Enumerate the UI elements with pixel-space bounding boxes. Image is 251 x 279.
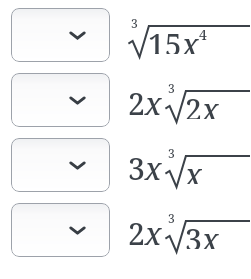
- staticText: 2x: [185, 89, 219, 119]
- button[interactable]: Open answer dropdown: [11, 8, 110, 62]
- button[interactable]: Open answer dropdown: [11, 73, 110, 127]
- button[interactable]: Open answer dropdown: [11, 138, 110, 192]
- staticText: x: [185, 154, 202, 184]
- staticText: 3: [168, 210, 175, 226]
- staticText: 3: [131, 15, 138, 31]
- staticText: 15x: [148, 24, 199, 54]
- staticText: 3x: [185, 219, 219, 249]
- staticText: 3: [168, 145, 175, 161]
- staticText: 4: [199, 25, 207, 44]
- staticText: 2x: [128, 213, 162, 254]
- staticText: 3: [168, 80, 175, 96]
- button[interactable]: Open answer dropdown: [11, 203, 110, 257]
- staticText: 2x: [128, 83, 162, 124]
- staticText: 3x: [128, 148, 162, 189]
